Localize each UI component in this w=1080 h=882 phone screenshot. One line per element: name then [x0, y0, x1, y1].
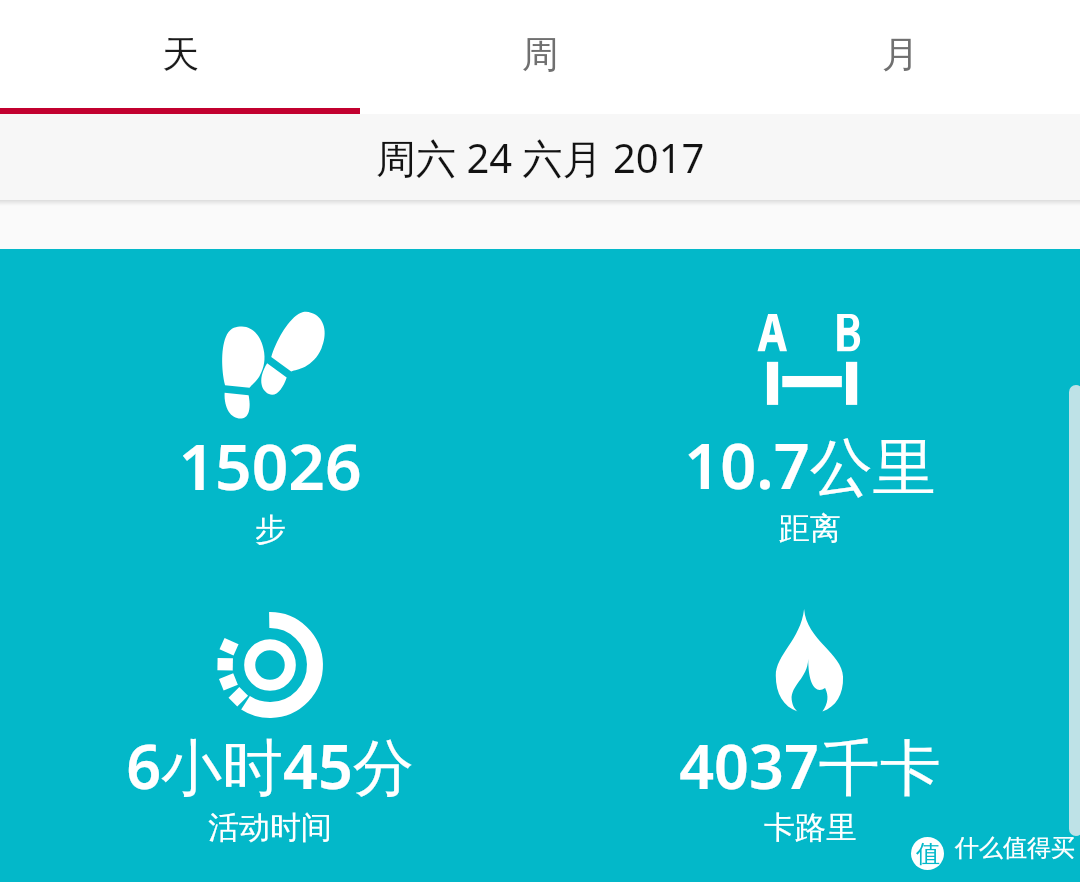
staticText: 4037千卡 [679, 724, 941, 807]
staticText: 天 [162, 31, 199, 78]
button[interactable]: Steps [0, 269, 540, 571]
staticText: 周 [522, 31, 559, 78]
staticText: 15026 [178, 422, 362, 509]
staticText: 步 [255, 510, 286, 549]
button[interactable]: 周 [360, 0, 720, 108]
button[interactable]: 天 [0, 0, 360, 108]
button[interactable]: 月 [720, 0, 1080, 108]
staticText: 月 [882, 31, 919, 78]
staticText: 活动时间 [208, 808, 332, 847]
staticText: 周六 24 六月 2017 [376, 130, 705, 185]
staticText: 10.7公里 [684, 422, 936, 508]
button[interactable]: Distance [540, 269, 1080, 571]
staticText: 距离 [779, 509, 841, 548]
staticText: 卡路里 [764, 808, 857, 847]
button[interactable]: Active time [0, 571, 540, 873]
staticText: 什么值得买 [955, 833, 1075, 863]
staticText: 值 [916, 839, 940, 869]
button[interactable]: Calories [540, 571, 1080, 873]
staticText: 6小时45分 [126, 724, 414, 807]
